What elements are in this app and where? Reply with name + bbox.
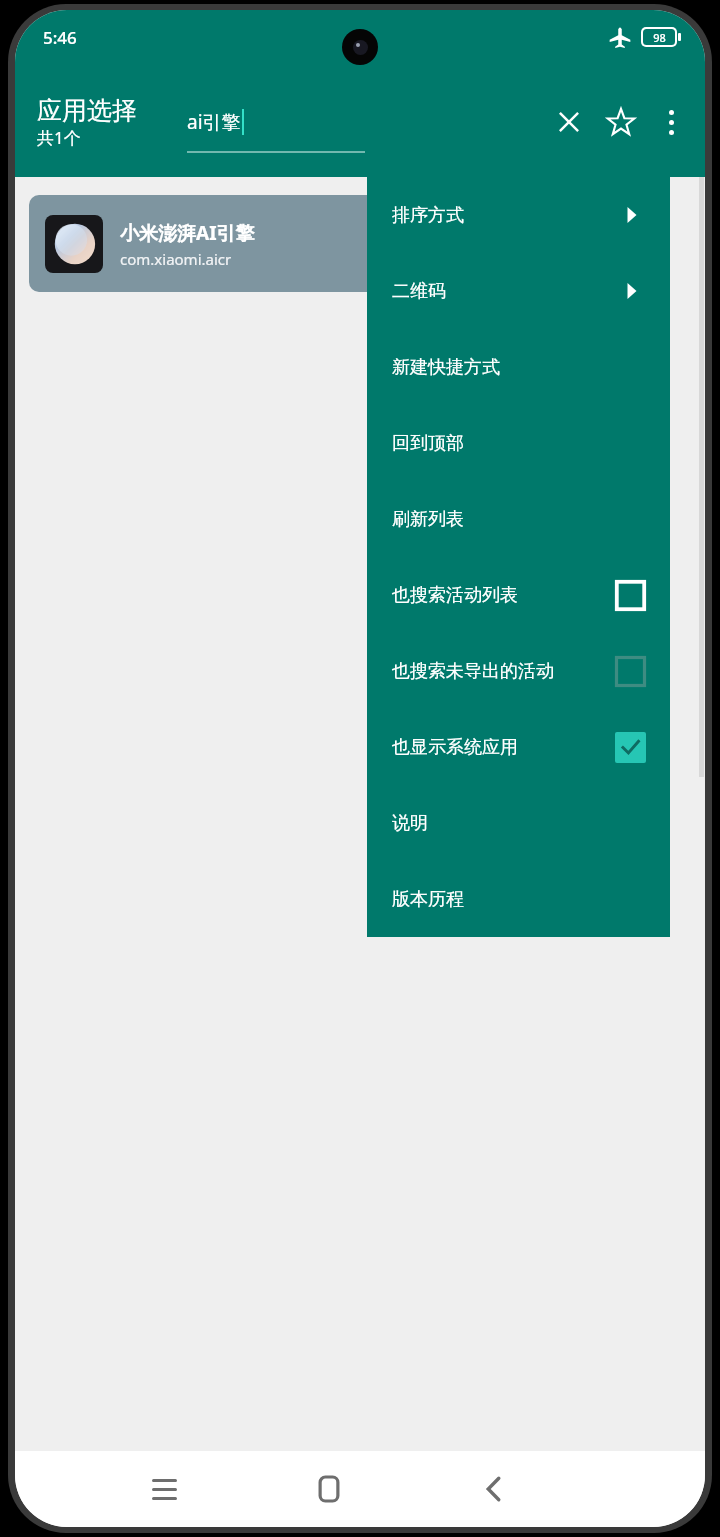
button[interactable]: Toggle (614, 579, 646, 611)
button[interactable]: 新建快捷方式 (367, 329, 670, 405)
staticText: 排序方式 (392, 204, 464, 227)
button[interactable]: 小米澎湃AI引擎 (29, 195, 449, 292)
button[interactable]: More options (647, 96, 695, 148)
button[interactable]: 刷新列表 (367, 481, 670, 557)
button[interactable]: Favorite (595, 96, 647, 148)
button[interactable]: Home (298, 1458, 360, 1520)
button[interactable]: 也搜索未导出的活动 (367, 633, 670, 709)
staticText: 98 (653, 30, 666, 45)
button[interactable]: Toggle (614, 655, 646, 687)
staticText: 新建快捷方式 (392, 356, 500, 379)
button[interactable]: 也显示系统应用 (367, 709, 670, 785)
button[interactable]: 二维码 (367, 253, 670, 329)
button[interactable]: Clear search (543, 96, 595, 148)
staticText: 版本历程 (392, 888, 464, 911)
staticText: 回到顶部 (392, 432, 464, 455)
button[interactable]: Back (463, 1458, 525, 1520)
button[interactable]: 也搜索活动列表 (367, 557, 670, 633)
staticText: 5:46 (43, 26, 77, 49)
staticText: com.xiaomi.aicr (120, 249, 232, 269)
staticText: 也搜索活动列表 (392, 584, 518, 607)
button[interactable]: Recent apps (133, 1458, 195, 1520)
staticText: 刷新列表 (392, 508, 464, 531)
button[interactable]: 说明 (367, 785, 670, 861)
staticText: 也搜索未导出的活动 (392, 660, 554, 683)
staticText: 小米澎湃AI引擎 (120, 220, 255, 246)
staticText: 应用选择 (37, 95, 137, 126)
staticText: 说明 (392, 812, 428, 835)
button[interactable]: ai引擎 (187, 91, 365, 153)
staticText: 共1个 (37, 126, 81, 149)
button[interactable]: Toggle (614, 731, 646, 763)
button[interactable]: 回到顶部 (367, 405, 670, 481)
button[interactable]: 版本历程 (367, 861, 670, 937)
staticText: 二维码 (392, 280, 446, 303)
staticText: ai引擎 (187, 109, 241, 135)
staticText: 也显示系统应用 (392, 736, 518, 759)
button[interactable]: 排序方式 (367, 177, 670, 253)
